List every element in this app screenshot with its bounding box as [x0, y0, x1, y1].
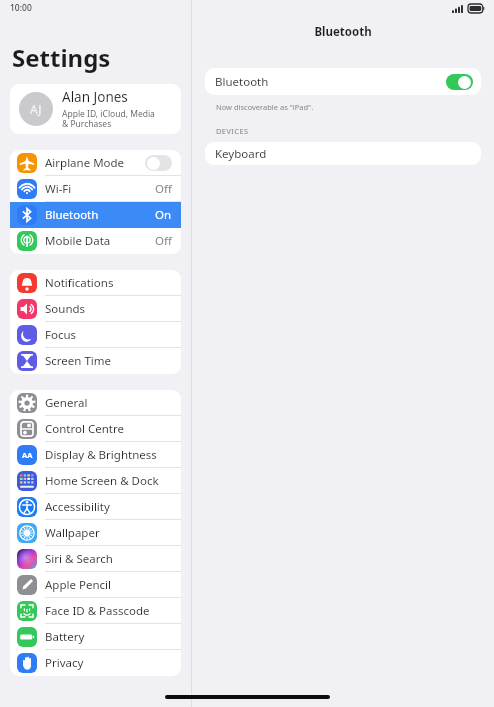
- button[interactable]: Control Centre: [10, 416, 181, 442]
- button[interactable]: Bluetooth: [10, 202, 181, 228]
- staticText: Battery: [45, 629, 172, 645]
- staticText: Airplane Mode: [45, 155, 145, 171]
- staticText: Control Centre: [45, 421, 172, 437]
- staticText: Mobile Data: [45, 233, 155, 249]
- staticText: Sounds: [45, 301, 172, 317]
- button[interactable]: Wallpaper: [10, 520, 181, 546]
- staticText: Off: [155, 181, 172, 197]
- button[interactable]: Focus: [10, 322, 181, 348]
- button[interactable]: Accessibility: [10, 494, 181, 520]
- button[interactable]: Face ID & Passcode: [10, 598, 181, 624]
- button[interactable]: AJ: [10, 84, 181, 134]
- staticText: AA: [22, 450, 33, 460]
- staticText: AJ: [30, 101, 42, 117]
- button[interactable]: AA: [10, 442, 181, 468]
- staticText: General: [45, 395, 172, 411]
- button[interactable]: Keyboard: [205, 142, 481, 165]
- button[interactable]: Privacy: [10, 650, 181, 676]
- staticText: Keyboard: [215, 146, 267, 162]
- staticText: Alan Jones: [62, 88, 128, 106]
- button[interactable]: Home Screen & Dock: [10, 468, 181, 494]
- button[interactable]: Sounds: [10, 296, 181, 322]
- staticText: Siri & Search: [45, 551, 172, 567]
- button[interactable]: Apple Pencil: [10, 572, 181, 598]
- staticText: Settings: [12, 41, 111, 74]
- staticText: Bluetooth: [215, 74, 446, 90]
- button[interactable]: Toggle: [446, 74, 473, 90]
- staticText: DEVICES: [216, 126, 249, 136]
- staticText: Face ID & Passcode: [45, 603, 172, 619]
- staticText: Off: [155, 233, 172, 249]
- button[interactable]: Notifications: [10, 270, 181, 296]
- staticText: Screen Time: [45, 353, 172, 369]
- button[interactable]: Mobile Data: [10, 228, 181, 254]
- staticText: Bluetooth: [192, 24, 494, 40]
- staticText: Home Screen & Dock: [45, 473, 172, 489]
- staticText: Apple Pencil: [45, 577, 172, 593]
- button[interactable]: Airplane Mode: [10, 150, 181, 176]
- staticText: Privacy: [45, 655, 172, 671]
- staticText: Wallpaper: [45, 525, 172, 541]
- staticText: Notifications: [45, 275, 172, 291]
- button[interactable]: Battery: [10, 624, 181, 650]
- staticText: Wi-Fi: [45, 181, 155, 197]
- staticText: Display & Brightness: [45, 447, 172, 463]
- staticText: Now discoverable as "iPad".: [216, 102, 314, 112]
- button[interactable]: General: [10, 390, 181, 416]
- staticText: On: [155, 207, 172, 223]
- staticText: Focus: [45, 327, 172, 343]
- staticText: Bluetooth: [45, 207, 155, 223]
- staticText: Apple ID, iCloud, Media & Purchases: [62, 108, 155, 130]
- button[interactable]: Screen Time: [10, 348, 181, 374]
- button[interactable]: Bluetooth: [205, 68, 481, 95]
- button[interactable]: Toggle: [145, 155, 172, 171]
- staticText: Accessibility: [45, 499, 172, 515]
- staticText: 10:00: [10, 2, 32, 14]
- button[interactable]: Siri & Search: [10, 546, 181, 572]
- button[interactable]: Wi-Fi: [10, 176, 181, 202]
